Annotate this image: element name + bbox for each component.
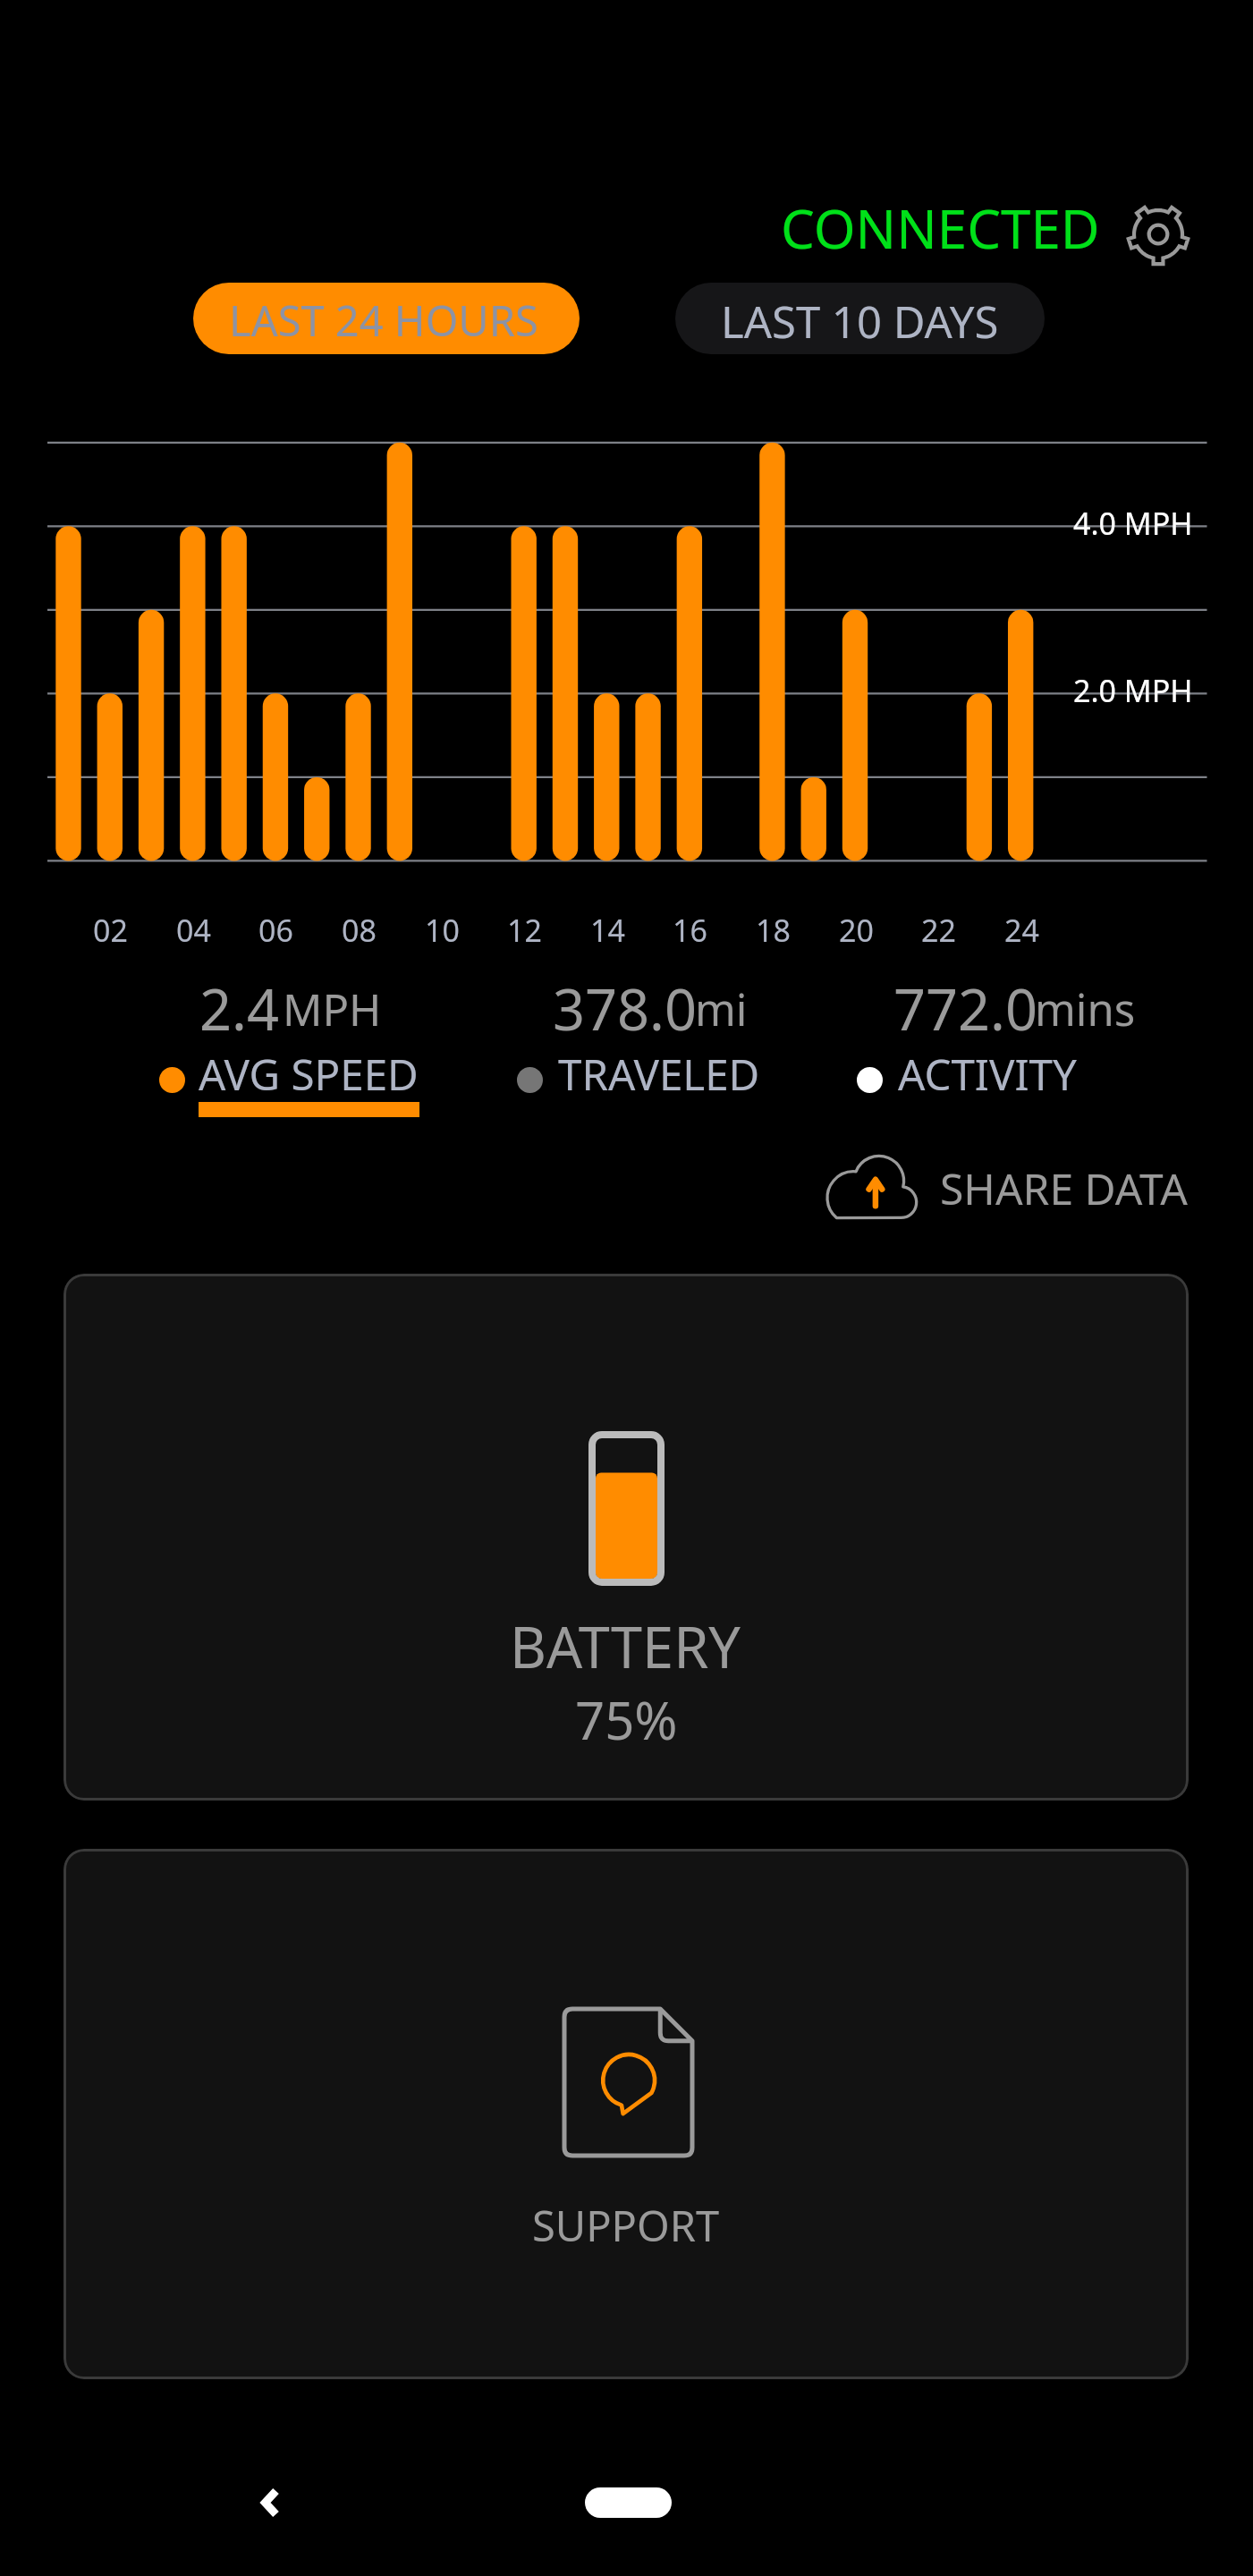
staticText: 02 <box>93 910 128 951</box>
staticText: 378.0 <box>553 970 698 1047</box>
staticText: 772.0 <box>893 970 1038 1047</box>
staticText: mi <box>695 979 748 1039</box>
staticText: 04 <box>176 910 211 951</box>
staticText: 75% <box>575 1684 678 1755</box>
staticText: 06 <box>258 910 293 951</box>
staticText: mins <box>1035 979 1136 1039</box>
staticText: CONNECTED <box>781 191 1100 265</box>
staticText: 4.0 MPH <box>1073 503 1193 544</box>
staticText: 20 <box>839 910 874 951</box>
staticText: ACTIVITY <box>898 1045 1077 1103</box>
staticText: 18 <box>756 910 791 951</box>
staticText: MPH <box>283 979 382 1039</box>
staticText: 14 <box>590 910 625 951</box>
staticText: TRAVELED <box>558 1045 760 1103</box>
staticText: 12 <box>507 910 542 951</box>
button[interactable]: SHARE DATA <box>809 1143 1198 1233</box>
staticText: 10 <box>425 910 460 951</box>
button[interactable]: Back <box>207 2453 333 2553</box>
staticText: 16 <box>673 910 707 951</box>
staticText: 24 <box>1004 910 1039 951</box>
button[interactable]: BATTERY <box>63 1274 1189 1801</box>
staticText: 2.0 MPH <box>1073 670 1193 711</box>
button[interactable]: Settings <box>1117 193 1198 275</box>
staticText: LAST 24 HOURS <box>229 292 538 349</box>
button[interactable]: SUPPORT <box>63 1849 1189 2379</box>
staticText: 2.4 <box>199 970 279 1047</box>
staticText: BATTERY <box>510 1608 741 1685</box>
button[interactable]: LAST 10 DAYS <box>675 283 1045 354</box>
staticText: 08 <box>342 910 377 951</box>
button[interactable]: LAST 24 HOURS <box>193 283 580 354</box>
staticText: SHARE DATA <box>940 1159 1189 1217</box>
staticText: LAST 10 DAYS <box>721 292 999 352</box>
button[interactable]: Home <box>547 2453 708 2553</box>
staticText: 22 <box>921 910 956 951</box>
staticText: SUPPORT <box>532 2197 720 2254</box>
staticText: AVG SPEED <box>199 1045 419 1103</box>
